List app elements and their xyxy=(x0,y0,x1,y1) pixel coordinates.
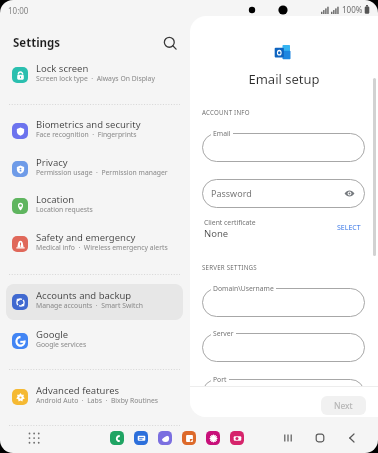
staticText: SERVER SETTINGS xyxy=(202,263,257,271)
staticText: Privacy xyxy=(36,156,68,169)
staticText: Location requests xyxy=(36,205,93,214)
button[interactable]: Next xyxy=(321,396,366,415)
staticText: Email setup xyxy=(190,70,378,88)
button[interactable]: Location xyxy=(6,188,183,224)
staticText: Android Auto · Labs · Bixby Routines xyxy=(36,396,158,405)
staticText: None xyxy=(204,227,229,240)
button[interactable]: Accounts and backup xyxy=(6,284,183,320)
staticText: Google services xyxy=(36,340,87,349)
button[interactable]: Messages xyxy=(134,431,148,445)
button[interactable]: Phone xyxy=(110,431,124,445)
staticText: Port xyxy=(213,375,227,384)
button[interactable]: Internet xyxy=(158,431,172,445)
staticText: Client certificate xyxy=(204,218,256,227)
button[interactable]: Google xyxy=(6,323,183,359)
button[interactable]: Show password xyxy=(344,188,355,199)
staticText: Email xyxy=(213,129,231,138)
staticText: 10:00 xyxy=(8,5,29,16)
staticText: Lock screen xyxy=(36,62,89,75)
staticText: Next xyxy=(334,400,353,412)
staticText: Manage accounts · Smart Switch xyxy=(36,301,143,310)
staticText: Biometrics and security xyxy=(36,118,141,131)
button[interactable]: Recents xyxy=(278,428,298,448)
staticText: Medical info · Wireless emergency alerts xyxy=(36,243,168,252)
staticText: Accounts and backup xyxy=(36,289,132,302)
staticText: Location xyxy=(36,193,75,206)
staticText: Settings xyxy=(13,35,61,51)
staticText: Server xyxy=(213,329,234,338)
button[interactable]: Safety and emergency xyxy=(6,226,183,262)
button[interactable]: Privacy xyxy=(6,151,183,187)
staticText: Permission usage · Permission manager xyxy=(36,168,168,177)
button[interactable]: Home xyxy=(310,428,330,448)
staticText: Face recognition · Fingerprints xyxy=(36,130,137,139)
staticText: Google xyxy=(36,328,69,341)
button[interactable]: Camera xyxy=(230,431,244,445)
staticText: 100% xyxy=(342,4,363,15)
button[interactable]: Biometrics and security xyxy=(6,113,183,149)
staticText: Domain\Username xyxy=(213,284,274,293)
button[interactable]: Gallery xyxy=(206,431,220,445)
button[interactable]: Advanced features xyxy=(6,379,183,415)
button[interactable]: Notes xyxy=(182,431,196,445)
button[interactable]: Back xyxy=(342,428,362,448)
staticText: Password xyxy=(211,187,252,199)
staticText: ACCOUNT INFO xyxy=(202,108,250,116)
staticText: SELECT xyxy=(337,223,361,233)
button[interactable]: SELECT xyxy=(334,220,364,236)
staticText: Safety and emergency xyxy=(36,231,136,244)
button[interactable]: Apps xyxy=(28,432,40,444)
button[interactable]: Search xyxy=(161,34,180,53)
staticText: Screen lock type · Always On Display xyxy=(36,74,155,83)
button[interactable]: Lock screen xyxy=(6,57,183,93)
staticText: Advanced features xyxy=(36,384,120,397)
